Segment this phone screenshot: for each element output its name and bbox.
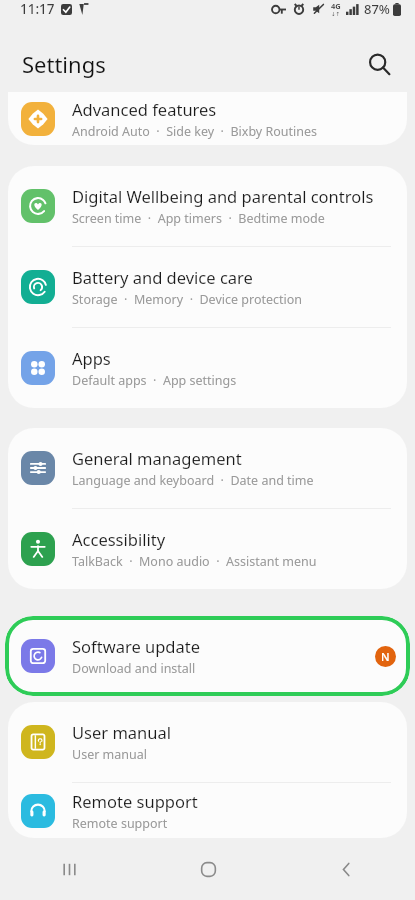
staticText: Android Auto · Side key · Bixby Routines <box>72 123 318 140</box>
button[interactable]: Back <box>277 838 415 900</box>
staticText: 87% <box>364 0 390 18</box>
button[interactable]: Apps <box>8 328 407 408</box>
staticText: 11:17 <box>20 0 55 18</box>
staticText: Software update <box>72 635 200 657</box>
button[interactable]: Remote support <box>8 783 407 838</box>
staticText: Language and keyboard · Date and time <box>72 472 314 489</box>
button[interactable]: Recent apps <box>0 838 139 900</box>
staticText: Apps <box>72 347 111 369</box>
button[interactable]: Advanced features <box>8 92 407 145</box>
staticText: User manual <box>72 746 147 763</box>
staticText: Settings <box>22 49 106 79</box>
button[interactable]: Battery and device care <box>8 247 407 327</box>
staticText: Storage · Memory · Device protection <box>72 291 303 308</box>
button[interactable]: Software update <box>5 616 410 696</box>
button[interactable]: Search <box>357 42 401 86</box>
staticText: Battery and device care <box>72 266 253 288</box>
staticText: Screen time · App timers · Bedtime mode <box>72 210 325 227</box>
staticText: User manual <box>72 721 171 743</box>
staticText: N <box>381 649 390 664</box>
staticText: Advanced features <box>72 98 217 120</box>
staticText: 4G <box>331 1 341 11</box>
staticText: Default apps · App settings <box>72 372 237 389</box>
staticText: Remote support <box>72 815 168 832</box>
button[interactable]: Accessibility <box>8 509 407 589</box>
staticText: TalkBack · Mono audio · Assistant menu <box>72 553 317 570</box>
button[interactable]: General management <box>8 428 407 508</box>
staticText: Remote support <box>72 790 198 812</box>
button[interactable]: Home <box>139 838 277 900</box>
staticText: ↓↑ <box>331 11 341 17</box>
button[interactable]: User manual <box>8 702 407 782</box>
staticText: Download and install <box>72 660 196 677</box>
staticText: Accessibility <box>72 528 166 550</box>
button[interactable]: Digital Wellbeing and parental controls <box>8 166 407 246</box>
button[interactable]: Software update <box>5 616 410 696</box>
staticText: Digital Wellbeing and parental controls <box>72 185 374 207</box>
staticText: General management <box>72 447 242 469</box>
